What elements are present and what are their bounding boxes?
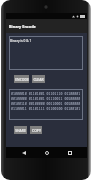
staticText: 01100011 01101111 01100100 01100101 0110… <box>11 106 83 110</box>
staticText: 01000010 01101001 01101110 01100001 0111… <box>11 91 83 95</box>
button[interactable]: CLEAR <box>32 75 45 83</box>
staticText: Binary is 0 & 1 <box>10 39 32 43</box>
staticText: SHARE <box>15 128 26 133</box>
button[interactable]: Recents <box>64 147 75 158</box>
button[interactable]: SHARE <box>14 126 27 134</box>
staticText: COPY <box>32 128 41 133</box>
button[interactable]: Binary is 0 & 1 <box>9 36 83 70</box>
staticText: Binary Encode <box>9 24 36 29</box>
button[interactable]: ENCODE <box>14 75 29 83</box>
staticText: ENCODE <box>15 77 29 82</box>
button[interactable]: COPY <box>30 126 42 134</box>
button[interactable]: Home <box>41 147 52 158</box>
staticText: 00100110 00100000 00110001 00100000 0110… <box>11 101 83 105</box>
button[interactable]: Back <box>18 147 29 158</box>
staticText: CLEAR <box>33 77 44 82</box>
staticText: 00100000 01101001 01110011 00100000 0011… <box>11 96 83 100</box>
